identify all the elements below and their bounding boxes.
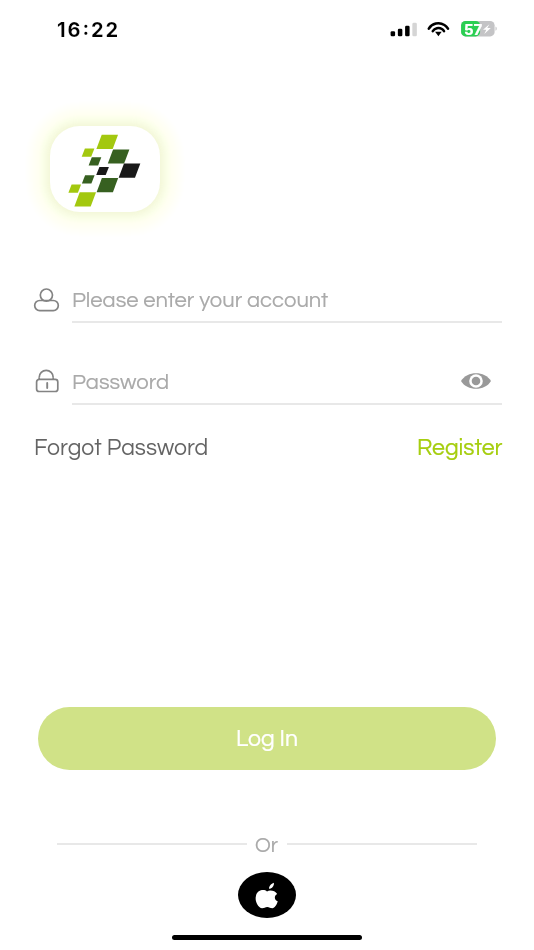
- staticText: Forgot Password: [34, 436, 209, 460]
- button[interactable]: Please enter your account: [30, 276, 506, 326]
- staticText: Register: [417, 436, 503, 460]
- staticText: 57: [464, 20, 483, 38]
- button[interactable]: Sign in with Apple: [238, 872, 296, 918]
- staticText: 16:22: [57, 18, 120, 42]
- button[interactable]: Register: [409, 430, 495, 466]
- staticText: Please enter your account: [72, 289, 329, 312]
- staticText: Password: [72, 371, 170, 394]
- button[interactable]: Password: [30, 358, 506, 408]
- staticText: Log In: [236, 727, 299, 751]
- button[interactable]: Show password: [448, 361, 504, 401]
- button[interactable]: Forgot Password: [26, 430, 201, 466]
- button[interactable]: Log In: [38, 707, 496, 770]
- staticText: Or: [255, 835, 278, 857]
